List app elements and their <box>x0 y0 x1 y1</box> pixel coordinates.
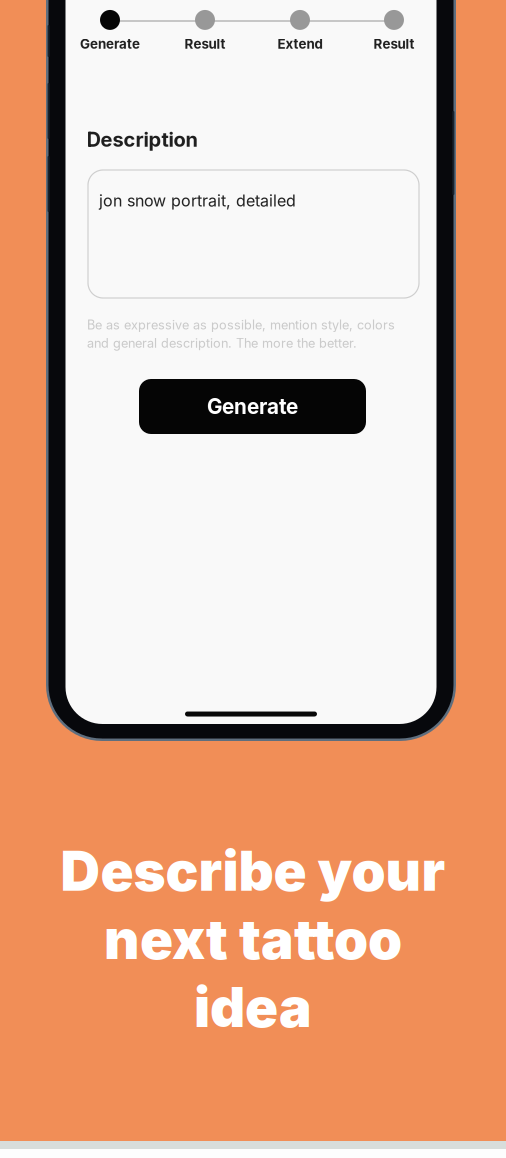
staticText: idea <box>194 974 312 1040</box>
button[interactable]: jon snow portrait, detailed <box>88 170 419 298</box>
button[interactable]: Generate <box>139 379 366 434</box>
staticText: Generate <box>207 394 298 419</box>
staticText: Generate <box>80 36 140 52</box>
staticText: Result <box>184 36 225 52</box>
staticText: Extend <box>277 36 322 52</box>
staticText: next tattoo <box>104 906 402 972</box>
staticText: jon snow portrait, detailed <box>99 191 296 210</box>
button[interactable]: Generate <box>71 11 149 51</box>
staticText: and general description. The more the be… <box>87 335 357 351</box>
button[interactable]: Result <box>355 11 433 51</box>
button[interactable]: Result <box>166 11 244 51</box>
button[interactable]: Extend <box>261 11 339 51</box>
staticText: Description <box>86 127 197 152</box>
staticText: Be as expressive as possible, mention st… <box>87 317 395 332</box>
staticText: Result <box>373 36 414 52</box>
staticText: Describe your <box>60 838 445 904</box>
